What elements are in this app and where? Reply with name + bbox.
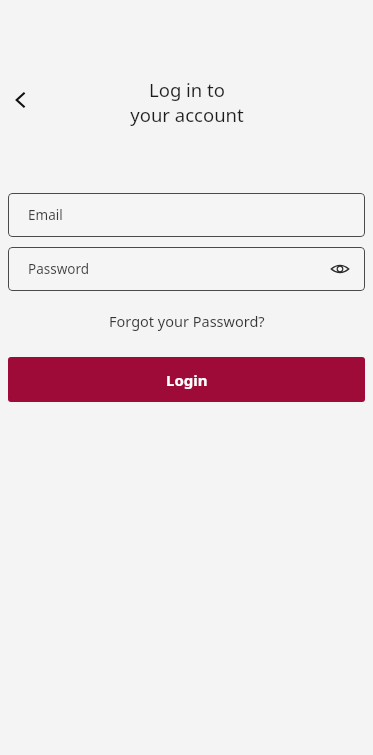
button[interactable]: Password xyxy=(8,247,365,291)
button[interactable]: Forgot your Password? xyxy=(101,307,273,335)
staticText: Login xyxy=(166,370,208,390)
staticText: Forgot your Password? xyxy=(109,311,265,331)
button[interactable]: Back xyxy=(2,81,40,119)
staticText: Email xyxy=(28,206,63,224)
button[interactable]: Email xyxy=(8,193,365,237)
button[interactable]: Show password xyxy=(325,254,355,284)
staticText: Password xyxy=(28,260,90,278)
staticText: Log in to your account xyxy=(130,77,244,127)
button[interactable]: Login xyxy=(8,357,365,402)
